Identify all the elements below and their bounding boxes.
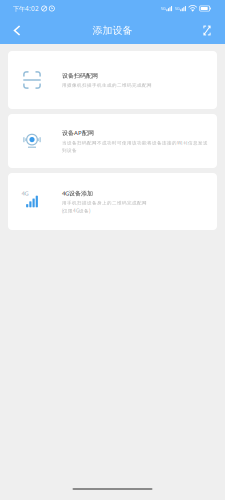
staticText: 当设备扫码配网不成功时可使用该功能将设备连接的WI-FI信息发送到设备 xyxy=(62,140,208,153)
staticText: 用手机扫描设备身上的二维码完成配网 (仅限4G设备) xyxy=(62,200,147,214)
staticText: 下午4:02 xyxy=(13,4,39,13)
button[interactable]: 4G xyxy=(8,173,217,230)
staticText: 添加设备 xyxy=(92,24,132,37)
button[interactable]: 设备扫码配网 xyxy=(8,51,217,109)
staticText: 4G设备添加 xyxy=(62,189,93,197)
staticText: 用摄像机扫描手机生成的二维码完成配网 xyxy=(62,82,152,88)
button[interactable]: 设备AP配网 xyxy=(8,114,217,168)
button[interactable]: Scan QR code xyxy=(196,18,218,42)
button[interactable]: Back xyxy=(6,18,28,42)
staticText: 设备扫码配网 xyxy=(62,72,98,79)
staticText: 5G xyxy=(161,6,166,11)
staticText: 4G xyxy=(21,189,28,197)
staticText: 设备AP配网 xyxy=(62,129,94,137)
staticText: 5G xyxy=(175,6,180,11)
